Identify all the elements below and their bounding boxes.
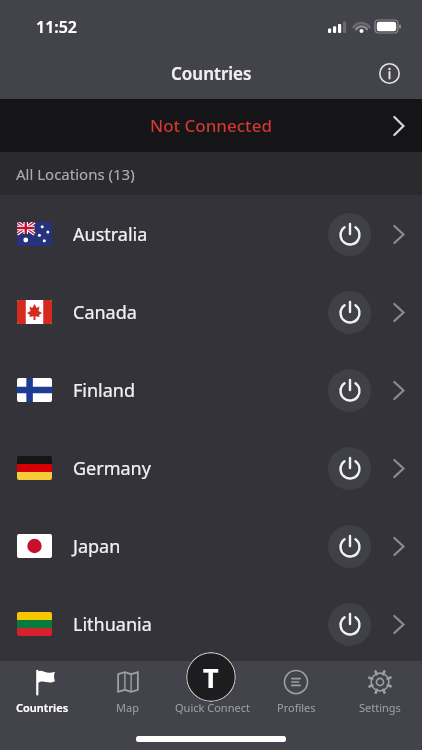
button[interactable]: Canada: [0, 273, 422, 351]
staticText: All Locations (13): [16, 164, 135, 184]
button[interactable]: [328, 291, 371, 334]
staticText: Not Connected: [150, 114, 272, 137]
button[interactable]: Not Connected: [0, 99, 422, 152]
button[interactable]: T: [186, 652, 236, 702]
staticText: Map: [116, 700, 139, 715]
button[interactable]: [328, 213, 371, 256]
button[interactable]: Germany: [0, 429, 422, 507]
staticText: Countries: [16, 700, 69, 715]
button[interactable]: [379, 63, 400, 84]
button[interactable]: [328, 525, 371, 568]
staticText: Canada: [73, 300, 328, 325]
button[interactable]: Profiles: [254, 661, 338, 750]
button[interactable]: [328, 603, 371, 646]
button[interactable]: Countries: [0, 661, 85, 750]
button[interactable]: Australia: [0, 195, 422, 273]
staticText: 11:52: [36, 16, 78, 38]
button[interactable]: Quick Connect: [170, 661, 254, 750]
staticText: Profiles: [277, 700, 316, 715]
staticText: Countries: [171, 62, 252, 85]
button[interactable]: [328, 369, 371, 412]
staticText: Lithuania: [73, 612, 328, 637]
button[interactable]: Map: [85, 661, 170, 750]
staticText: Germany: [73, 456, 328, 481]
button[interactable]: [328, 447, 371, 490]
staticText: Japan: [73, 534, 328, 559]
button[interactable]: Finland: [0, 351, 422, 429]
button[interactable]: Lithuania: [0, 585, 422, 663]
staticText: Australia: [73, 222, 328, 247]
staticText: Settings: [359, 700, 401, 715]
button[interactable]: Japan: [0, 507, 422, 585]
staticText: Quick Connect: [175, 700, 250, 715]
staticText: T: [203, 659, 219, 696]
staticText: Finland: [73, 378, 328, 403]
button[interactable]: Settings: [338, 661, 422, 750]
